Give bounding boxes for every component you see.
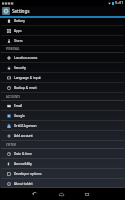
button[interactable]: Google — [0, 111, 125, 121]
staticText: Language & input — [14, 76, 41, 80]
button[interactable]: Backup & reset — [0, 83, 125, 93]
staticText: 5:41 — [115, 0, 124, 6]
button[interactable]: Apps — [0, 26, 125, 36]
staticText: Location access — [14, 56, 38, 60]
button[interactable]: Battery — [0, 16, 125, 26]
staticText: PERSONAL — [6, 47, 20, 51]
staticText: About tablet — [14, 182, 33, 186]
staticText: Developer options — [14, 172, 42, 176]
button[interactable]: Security — [0, 63, 125, 73]
staticText: Date & time — [14, 152, 32, 156]
button[interactable]: Grid-E.bgreson — [0, 121, 125, 131]
staticText: Google — [14, 114, 25, 118]
button[interactable]: Back — [28, 188, 40, 200]
button[interactable]: Language & input — [0, 73, 125, 83]
staticText: Backup & reset — [14, 86, 37, 90]
staticText: Users — [14, 39, 23, 43]
button[interactable]: Users — [0, 36, 125, 46]
button[interactable]: Add account — [0, 131, 125, 141]
staticText: Email — [14, 104, 23, 108]
button[interactable]: Recent apps — [81, 188, 93, 200]
button[interactable]: Home — [55, 188, 67, 200]
button[interactable]: Accessibility — [0, 159, 125, 169]
staticText: SYSTEM — [6, 143, 16, 147]
staticText: Accessibility — [14, 162, 32, 166]
button[interactable]: Settings — [0, 6, 125, 16]
staticText: Settings — [12, 8, 30, 14]
button[interactable]: Email — [0, 101, 125, 111]
button[interactable]: Developer options — [0, 169, 125, 179]
staticText: Grid-E.bgreson — [14, 124, 37, 128]
button[interactable]: Location access — [0, 53, 125, 63]
button[interactable]: About tablet — [0, 179, 125, 188]
staticText: Battery — [14, 19, 25, 23]
staticText: Add account — [14, 134, 33, 138]
button[interactable]: Date & time — [0, 149, 125, 159]
staticText: Apps — [14, 29, 22, 33]
staticText: Security — [14, 66, 26, 70]
staticText: ACCOUNTS — [6, 95, 21, 99]
